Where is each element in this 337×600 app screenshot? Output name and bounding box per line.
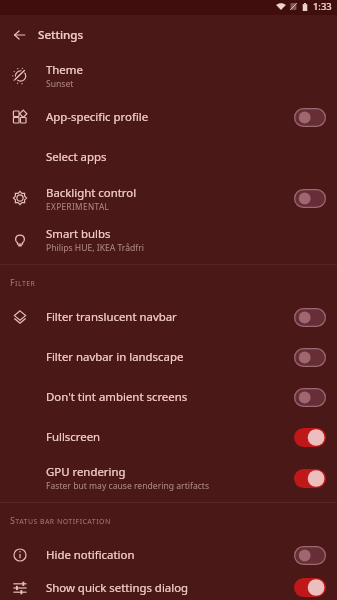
- staticText: Faster but may cause rendering artifacts: [46, 480, 210, 492]
- button[interactable]: Toggle Show quick settings dialog: [294, 575, 326, 600]
- staticText: Settings: [38, 27, 84, 43]
- staticText: STATUS BAR NOTIFICATION: [10, 515, 111, 527]
- button[interactable]: App-specific profile: [0, 97, 337, 137]
- button[interactable]: Filter translucent navbar: [0, 297, 337, 337]
- button[interactable]: GPU rendering: [0, 457, 337, 499]
- staticText: Show quick settings dialog: [46, 580, 189, 596]
- button[interactable]: Toggle Filter translucent navbar: [294, 297, 326, 337]
- button[interactable]: Hide notification: [0, 535, 337, 575]
- staticText: Select apps: [46, 149, 107, 165]
- button[interactable]: Navigate up: [0, 15, 38, 55]
- staticText: App-specific profile: [46, 109, 149, 125]
- button[interactable]: Toggle Filter navbar in landscape: [294, 337, 326, 377]
- button[interactable]: Don't tint ambient screens: [0, 377, 337, 417]
- staticText: FILTER: [10, 277, 36, 289]
- button[interactable]: Fullscreen: [0, 417, 337, 457]
- button[interactable]: Toggle Hide notification: [294, 535, 326, 575]
- button[interactable]: Show quick settings dialog: [0, 575, 337, 600]
- staticText: Smart bulbs: [46, 226, 111, 242]
- staticText: EXPERIMENTAL: [46, 201, 110, 212]
- button[interactable]: Toggle Backlight control: [294, 177, 326, 219]
- staticText: Filter translucent navbar: [46, 309, 177, 325]
- button[interactable]: Filter navbar in landscape: [0, 337, 337, 377]
- staticText: Fullscreen: [46, 429, 101, 445]
- button[interactable]: Select apps: [0, 137, 337, 177]
- button[interactable]: Toggle Fullscreen: [294, 417, 326, 457]
- button[interactable]: Toggle Don't tint ambient screens: [294, 377, 326, 417]
- staticText: Filter navbar in landscape: [46, 349, 184, 365]
- staticText: Backlight control: [46, 185, 137, 201]
- button[interactable]: Toggle GPU rendering: [294, 457, 326, 499]
- button[interactable]: Theme: [0, 55, 337, 97]
- button[interactable]: Smart bulbs: [0, 219, 337, 261]
- staticText: Don't tint ambient screens: [46, 389, 188, 405]
- staticText: 1:33: [313, 0, 332, 13]
- staticText: Hide notification: [46, 547, 135, 563]
- staticText: GPU rendering: [46, 464, 126, 480]
- staticText: Theme: [46, 62, 83, 78]
- button[interactable]: Toggle App-specific profile: [294, 97, 326, 137]
- button[interactable]: Backlight control: [0, 177, 337, 219]
- staticText: Sunset: [46, 78, 74, 90]
- staticText: Philips HUE, IKEA Trådfri: [46, 242, 145, 254]
